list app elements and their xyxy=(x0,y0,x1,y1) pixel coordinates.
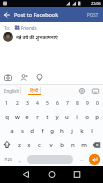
staticText: l xyxy=(91,127,93,135)
button[interactable] xyxy=(0,138,14,152)
staticText: q xyxy=(5,113,9,121)
staticText: 5 xyxy=(46,100,49,107)
button[interactable]: 2 xyxy=(12,97,22,110)
button[interactable]: x xyxy=(24,138,34,152)
staticText: 1 xyxy=(5,100,8,107)
staticText: ... xyxy=(80,157,84,162)
staticText: 0 xyxy=(96,100,99,107)
button[interactable] xyxy=(27,155,73,164)
button[interactable] xyxy=(89,154,100,165)
staticText: POST xyxy=(87,12,99,18)
staticText: k xyxy=(80,127,84,135)
staticText: 4 xyxy=(36,100,39,107)
button[interactable]: i xyxy=(72,110,82,124)
button[interactable]: h xyxy=(57,124,67,138)
button[interactable]: 4 xyxy=(32,97,42,110)
button[interactable]: 1 xyxy=(1,97,12,110)
staticText: Post to Facebook xyxy=(14,11,59,18)
staticText: 8 xyxy=(76,100,79,107)
staticText: To: xyxy=(4,25,11,31)
button[interactable] xyxy=(4,74,12,81)
button[interactable]: y xyxy=(52,110,62,124)
staticText: 7 xyxy=(66,100,69,107)
button[interactable]: q xyxy=(1,110,12,124)
staticText: f xyxy=(41,127,44,135)
staticText: English xyxy=(4,88,20,94)
button[interactable]: z xyxy=(14,138,24,152)
staticText: g xyxy=(50,127,54,135)
button[interactable]: r xyxy=(32,110,42,124)
staticText: x xyxy=(27,141,31,149)
button[interactable]: POST xyxy=(87,12,99,18)
button[interactable]: n xyxy=(67,138,78,152)
button[interactable] xyxy=(79,88,85,94)
staticText: h xyxy=(60,127,64,135)
button[interactable]: 9 xyxy=(82,97,92,110)
staticText: 9 xyxy=(86,100,89,107)
button[interactable]: 6 xyxy=(52,97,62,110)
button[interactable]: 8 xyxy=(72,97,82,110)
button[interactable] xyxy=(36,74,43,81)
button[interactable]: d xyxy=(27,124,37,138)
staticText: 6 xyxy=(56,100,59,107)
staticText: 3 xyxy=(26,100,29,107)
button[interactable]: 5 xyxy=(42,97,52,110)
button[interactable]: f xyxy=(37,124,47,138)
button[interactable]: s xyxy=(17,124,27,138)
staticText: u xyxy=(65,113,69,121)
staticText: d xyxy=(30,127,34,135)
staticText: y xyxy=(55,113,59,121)
button[interactable]: b xyxy=(56,138,67,152)
staticText: p xyxy=(95,113,99,121)
staticText: r xyxy=(36,113,39,121)
staticText: j xyxy=(71,127,73,135)
button[interactable]: l xyxy=(87,124,97,138)
button[interactable] xyxy=(0,166,35,183)
button[interactable]: m xyxy=(78,138,89,152)
button[interactable] xyxy=(20,74,28,81)
button[interactable]: p xyxy=(92,110,102,124)
button[interactable]: k xyxy=(77,124,87,138)
staticText: m xyxy=(81,141,87,149)
button[interactable] xyxy=(89,138,103,152)
button[interactable]: o xyxy=(82,110,92,124)
staticText: o xyxy=(85,113,89,121)
button[interactable]: English xyxy=(4,88,20,94)
button[interactable]: a xyxy=(6,124,17,138)
button[interactable]: 0 xyxy=(92,97,102,110)
button[interactable]: c xyxy=(34,138,45,152)
staticText: v xyxy=(49,141,53,149)
staticText: s xyxy=(21,127,24,135)
button[interactable]: , xyxy=(15,152,25,166)
staticText: हिन्दी xyxy=(30,87,39,93)
staticText: b xyxy=(60,141,64,149)
staticText: Friends xyxy=(21,25,37,31)
staticText: w xyxy=(15,113,20,121)
button[interactable]: To: xyxy=(4,24,103,31)
button[interactable]: v xyxy=(45,138,56,152)
button[interactable]: ... xyxy=(76,152,88,166)
staticText: नई वर्ष की शुभकामनाएं xyxy=(16,34,58,40)
button[interactable]: e xyxy=(22,110,32,124)
button[interactable] xyxy=(4,12,10,18)
button[interactable]: 7 xyxy=(62,97,72,110)
staticText: i xyxy=(76,113,78,121)
button[interactable]: ?123 xyxy=(1,152,15,166)
staticText: a xyxy=(10,127,14,135)
staticText: z xyxy=(18,141,21,149)
button[interactable]: 3 xyxy=(22,97,32,110)
button[interactable]: w xyxy=(12,110,22,124)
staticText: 22:06 xyxy=(91,1,101,6)
button[interactable]: हिन्दी xyxy=(28,87,41,95)
button[interactable]: j xyxy=(67,124,77,138)
button[interactable]: u xyxy=(62,110,72,124)
button[interactable]: t xyxy=(42,110,52,124)
staticText: n xyxy=(71,141,75,149)
button[interactable]: g xyxy=(47,124,57,138)
button[interactable] xyxy=(92,88,99,94)
staticText: ?123 xyxy=(4,157,12,162)
button[interactable] xyxy=(35,166,69,183)
staticText: c xyxy=(38,141,41,149)
staticText: e xyxy=(25,113,29,121)
button[interactable] xyxy=(69,166,103,183)
